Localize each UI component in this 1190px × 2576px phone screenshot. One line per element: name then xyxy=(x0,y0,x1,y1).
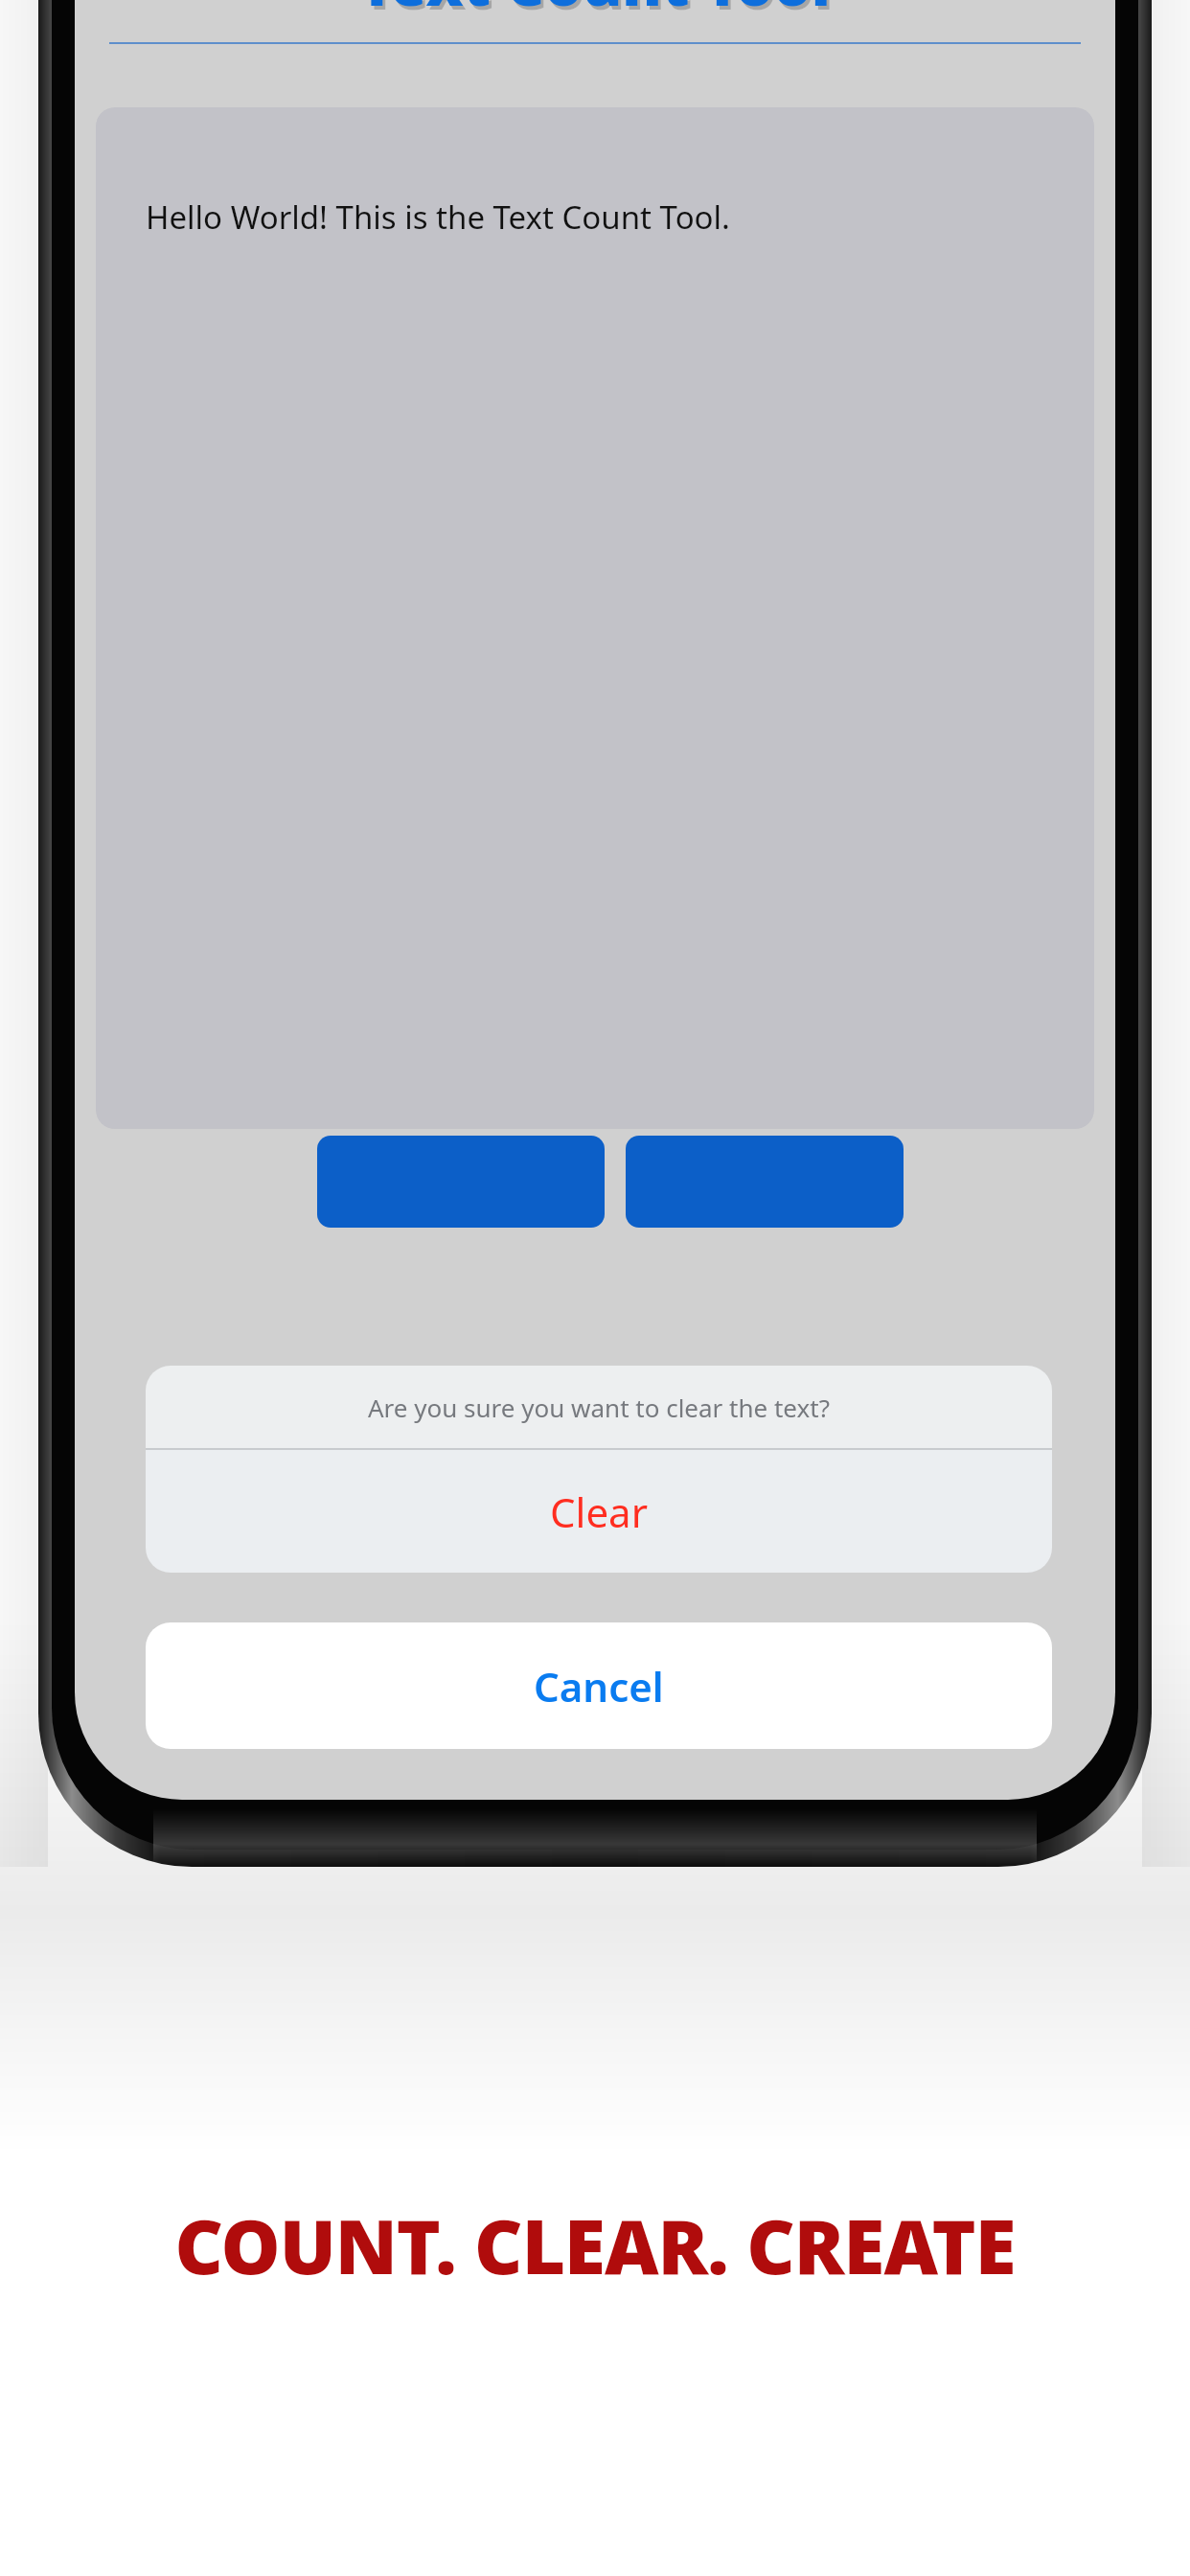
staticText: Text Count Tool xyxy=(359,0,831,23)
button[interactable]: Clear xyxy=(146,1450,1052,1573)
button[interactable] xyxy=(317,1136,605,1228)
staticText: Hello World! This is the Text Count Tool… xyxy=(146,195,730,239)
staticText: Cancel xyxy=(534,1659,664,1713)
staticText: COUNT. CLEAR. CREATE xyxy=(174,2195,1016,2296)
button[interactable]: Hello World! This is the Text Count Tool… xyxy=(96,107,1094,1129)
staticText: Are you sure you want to clear the text? xyxy=(368,1391,830,1424)
button[interactable]: Cancel xyxy=(146,1622,1052,1749)
staticText: Clear xyxy=(550,1484,648,1539)
button[interactable] xyxy=(626,1136,904,1228)
staticText: Text Count Tool xyxy=(362,0,834,27)
